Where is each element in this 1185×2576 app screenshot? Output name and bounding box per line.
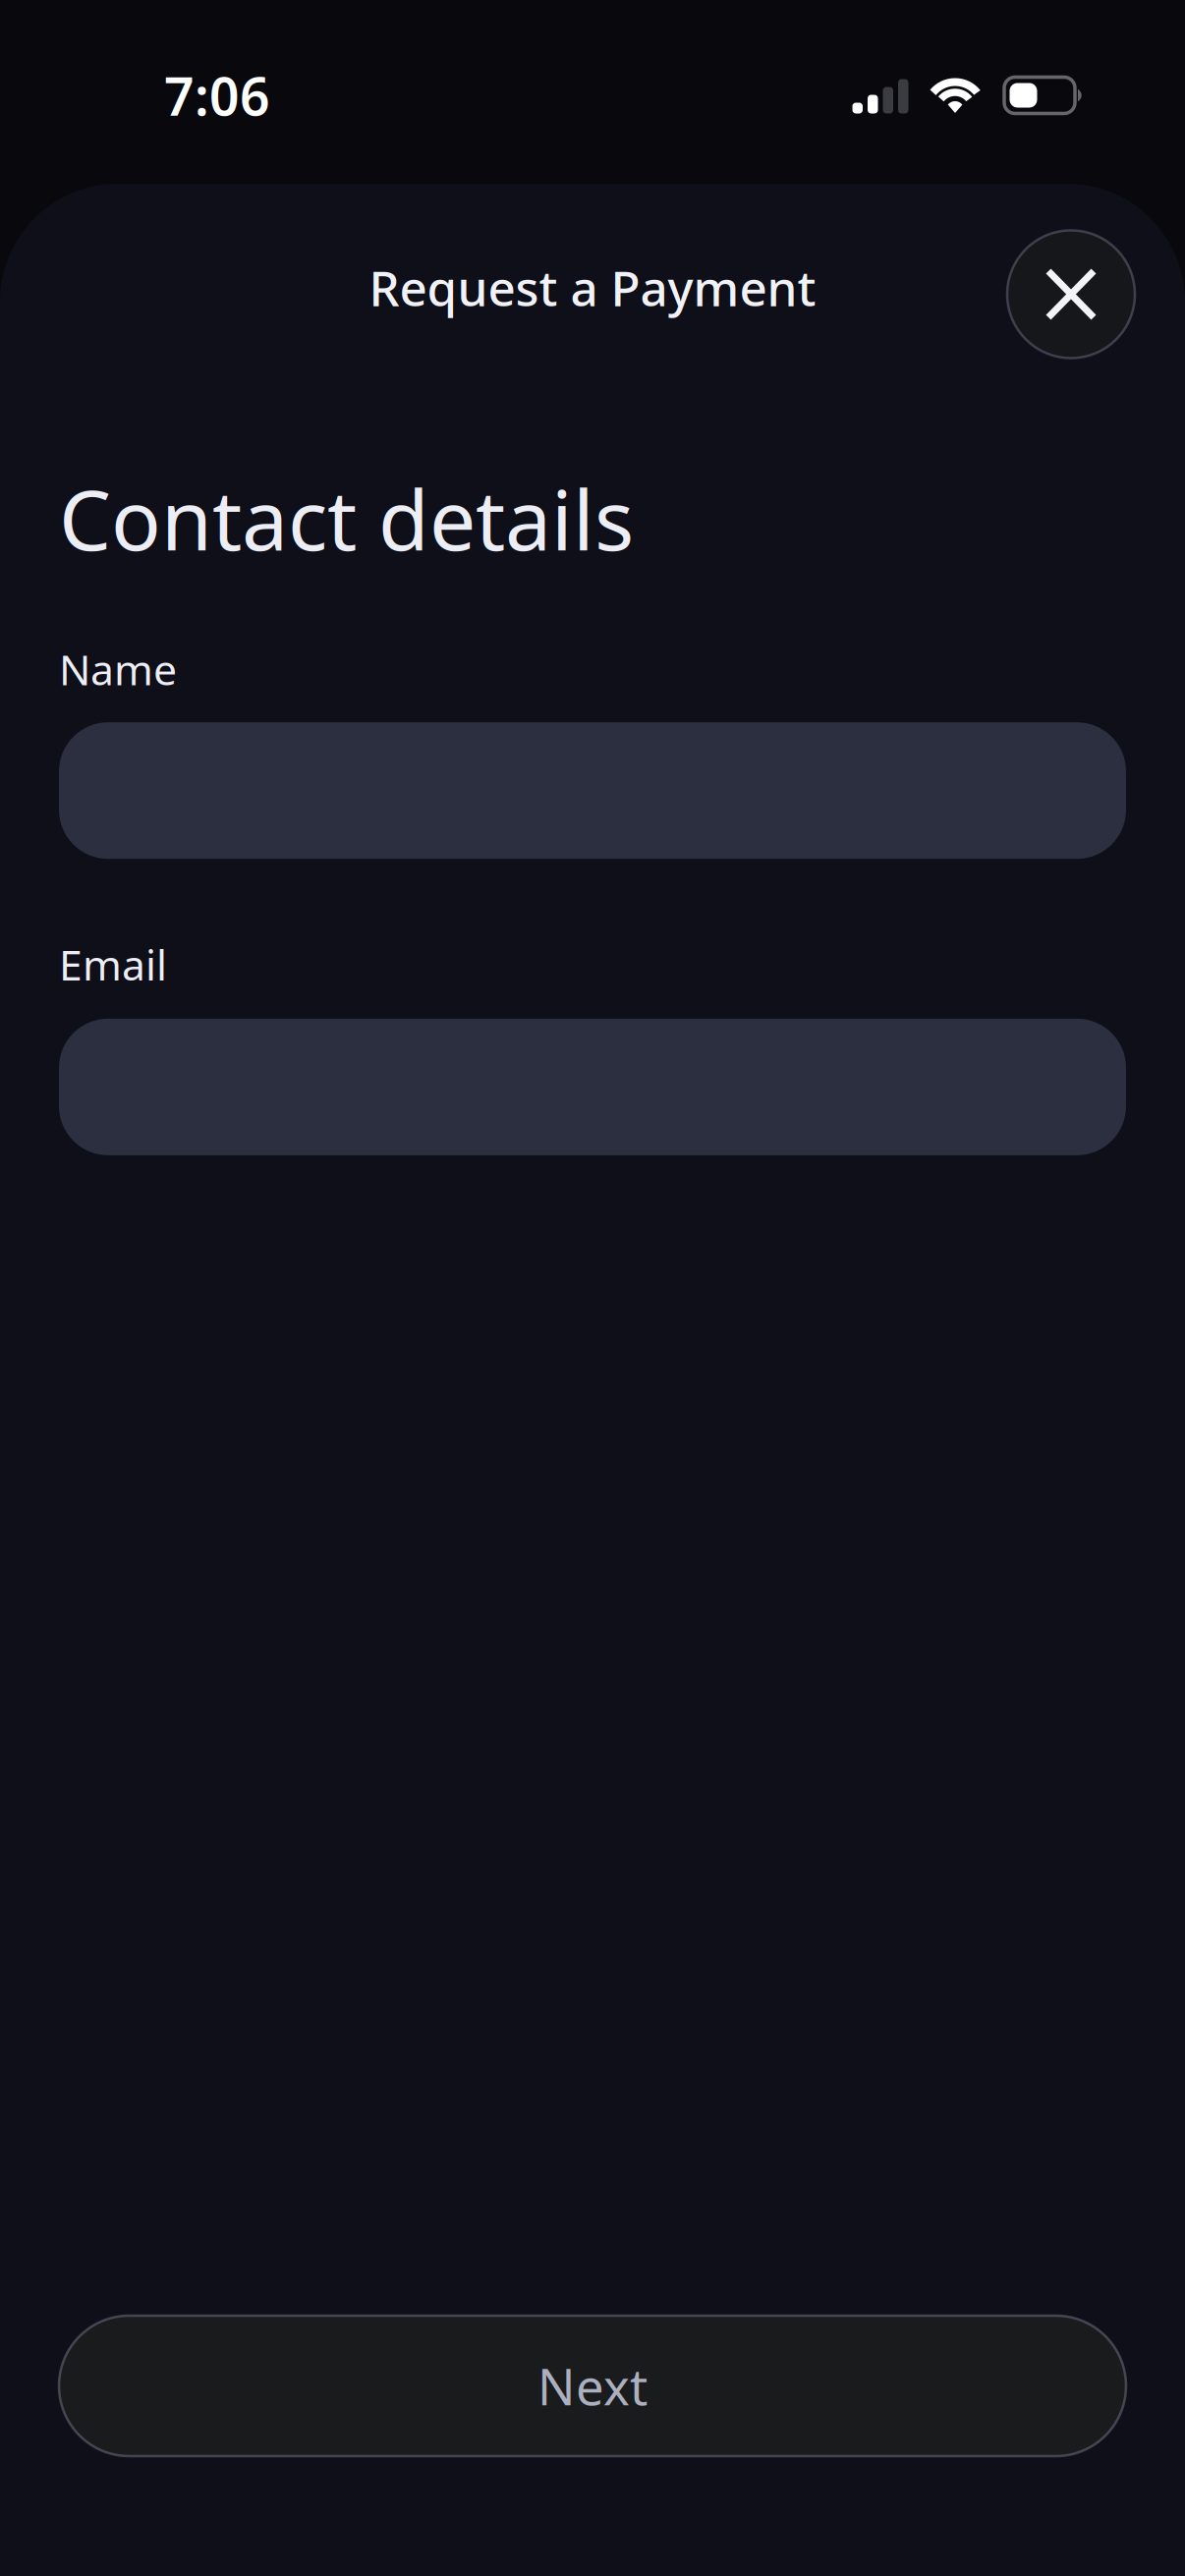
button[interactable]: Next — [59, 2316, 1126, 2456]
staticText: 7:06 — [164, 61, 270, 130]
staticText: Email — [59, 936, 167, 992]
button[interactable]: Name — [59, 722, 1126, 859]
staticText: Request a Payment — [369, 255, 816, 319]
button[interactable]: Close — [1007, 230, 1135, 358]
staticText: Name — [59, 641, 177, 697]
staticText: Contact details — [59, 464, 634, 573]
staticText: Next — [537, 2353, 648, 2419]
button[interactable]: Email — [59, 1019, 1126, 1155]
